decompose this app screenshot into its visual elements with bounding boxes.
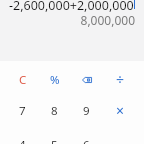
staticText: C xyxy=(19,72,27,88)
button[interactable]: ÷ xyxy=(104,64,137,95)
button[interactable]: 5 xyxy=(38,129,71,144)
button[interactable]: C xyxy=(6,64,39,95)
staticText: 4 xyxy=(19,137,26,144)
button[interactable]: 4 xyxy=(6,129,39,144)
staticText: 9 xyxy=(83,103,90,119)
staticText: × xyxy=(116,101,125,120)
button[interactable]: 8 xyxy=(38,95,71,126)
button[interactable]: Backspace xyxy=(70,64,103,95)
staticText: % xyxy=(50,72,60,88)
staticText: 6 xyxy=(83,137,90,144)
staticText: 8,000,000 xyxy=(0,12,135,28)
button[interactable]: 6 xyxy=(70,129,103,144)
staticText: -2,600,000+2,000,000 xyxy=(9,0,134,14)
staticText: ÷ xyxy=(116,70,125,89)
other: Backspace xyxy=(82,77,92,83)
button[interactable]: × xyxy=(104,95,137,126)
staticText: 7 xyxy=(19,103,26,119)
button[interactable]: % xyxy=(38,64,71,95)
staticText: 5 xyxy=(51,137,58,144)
button[interactable]: 7 xyxy=(6,95,39,126)
button[interactable]: 9 xyxy=(70,95,103,126)
staticText: 8 xyxy=(51,103,58,119)
